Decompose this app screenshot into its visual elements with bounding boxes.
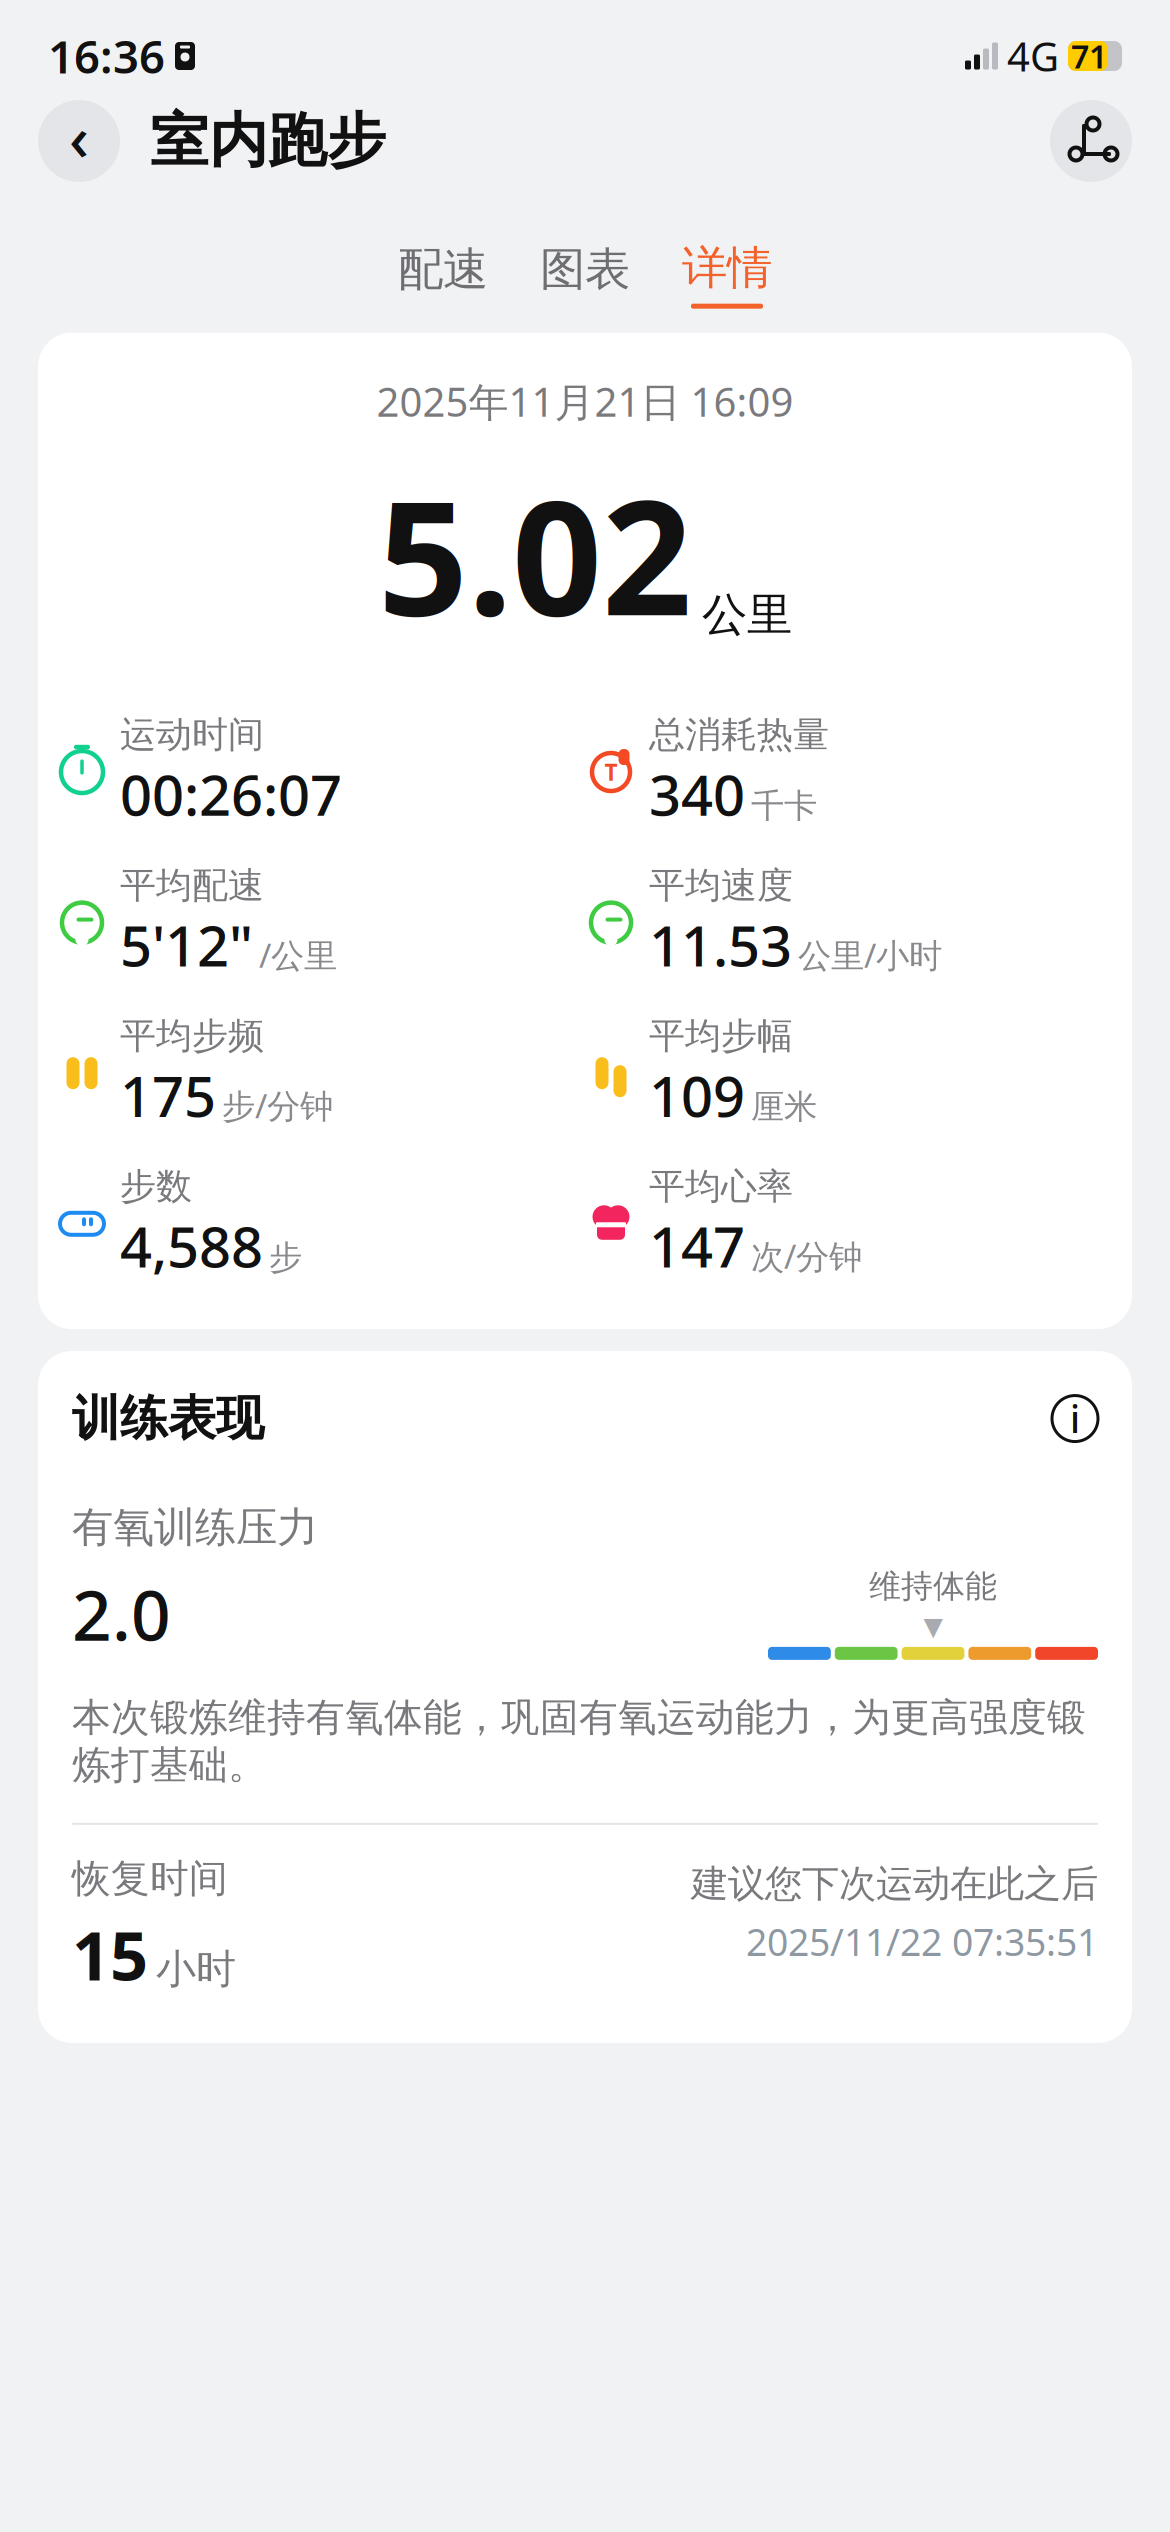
staticText: 公里 <box>702 587 792 643</box>
staticText: 2.0 <box>72 1568 171 1660</box>
staticText: 步 <box>269 1237 302 1278</box>
staticText: 详情 <box>682 240 772 296</box>
staticText: 5.02 <box>378 450 692 659</box>
staticText: 147 <box>649 1209 745 1283</box>
staticText: 步数 <box>120 1164 192 1209</box>
staticText: 00:26:07 <box>120 757 342 831</box>
staticText: 总消耗热量 <box>649 713 829 757</box>
staticText: 平均心率 <box>649 1164 793 1209</box>
staticText: 有氧训练压力 <box>72 1502 318 1553</box>
staticText: 图表 <box>540 241 630 297</box>
staticText: 运动时间 <box>120 713 264 757</box>
staticText: 平均步幅 <box>649 1014 793 1058</box>
staticText: i <box>1070 1394 1080 1443</box>
staticText: ▼ <box>923 1612 942 1641</box>
staticText: 小时 <box>156 1945 236 1994</box>
button[interactable]: 详情 <box>656 230 798 309</box>
staticText: 配速 <box>398 241 488 297</box>
staticText: 5'12" <box>120 907 253 982</box>
staticText: 维持体能 <box>869 1567 997 1606</box>
staticText: 平均配速 <box>120 863 264 907</box>
staticText: 训练表现 <box>72 1389 264 1448</box>
staticText: 109 <box>649 1058 745 1132</box>
staticText: 340 <box>649 757 745 831</box>
staticText: 2025/11/22 07:35:51 <box>746 1917 1098 1966</box>
staticText: 15 <box>72 1910 148 1999</box>
staticText: 175 <box>120 1058 216 1132</box>
staticText: 平均步频 <box>120 1014 264 1058</box>
staticText: 16:36 <box>48 26 165 86</box>
staticText: 步/分钟 <box>222 1083 333 1127</box>
staticText: 平均速度 <box>649 863 793 907</box>
staticText: 2025年11月21日 16:09 <box>376 375 793 428</box>
staticText: 4G <box>1007 29 1059 82</box>
staticText: 室内跑步 <box>150 105 386 177</box>
staticText: 千卡 <box>751 785 817 826</box>
staticText: 厘米 <box>751 1086 817 1127</box>
staticText: 恢复时间 <box>72 1855 228 1902</box>
staticText: 公里/小时 <box>798 933 942 977</box>
staticText: /公里 <box>259 933 337 977</box>
staticText: 11.53 <box>649 907 792 982</box>
button[interactable]: 配速 <box>372 231 514 307</box>
staticText: T <box>604 757 617 787</box>
staticText: 本次锻炼维持有氧体能，巩固有氧运动能力，为更高强度锻炼打基础。 <box>72 1694 1086 1789</box>
button[interactable]: 分享 <box>1050 100 1132 182</box>
button[interactable]: 返回 <box>38 100 120 182</box>
staticText: ‹ <box>69 96 89 178</box>
button[interactable]: 图表 <box>514 231 656 307</box>
button[interactable]: 说明 <box>1052 1394 1098 1443</box>
staticText: 次/分钟 <box>751 1234 862 1278</box>
staticText: 建议您下次运动在此之后 <box>691 1861 1098 1907</box>
staticText: 4,588 <box>120 1209 263 1283</box>
staticText: 71 <box>1071 35 1107 77</box>
